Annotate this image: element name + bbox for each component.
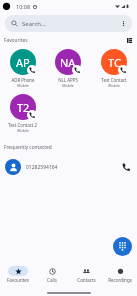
staticText: NA <box>60 55 76 70</box>
staticText: AP <box>16 55 30 70</box>
button[interactable]: T2 <box>0 92 45 137</box>
staticText: ADR Phone <box>11 77 35 83</box>
button[interactable]: Search... <box>5 15 132 32</box>
staticText: Recordings <box>108 277 132 283</box>
staticText: 01282594164 <box>26 164 58 171</box>
button[interactable]: Calls <box>35 264 69 283</box>
staticText: Frequently contacted <box>4 144 52 151</box>
button[interactable]: Contacts <box>69 264 103 283</box>
staticText: Mobile <box>62 83 74 88</box>
staticText: Contacts <box>77 277 96 283</box>
staticText: 10:08 <box>16 3 31 10</box>
staticText: Favourites <box>7 277 29 283</box>
button[interactable]: Change layout <box>124 35 134 45</box>
button[interactable]: Favourites <box>0 264 35 283</box>
button[interactable]: Call <box>120 161 132 173</box>
staticText: Calls <box>47 277 57 283</box>
staticText: T2 <box>17 100 30 115</box>
staticText: Mobile <box>108 83 120 88</box>
staticText: NLL APPS <box>58 77 78 83</box>
staticText: Test Contact <box>101 77 127 83</box>
button[interactable]: Dialpad <box>113 237 132 256</box>
button[interactable]: More options <box>119 19 128 28</box>
staticText: Favourites <box>4 37 28 44</box>
staticText: Test Contact 2 <box>8 122 37 128</box>
button[interactable]: AP <box>0 47 45 92</box>
button[interactable]: TC <box>91 47 137 92</box>
staticText: TC <box>108 55 121 70</box>
button[interactable]: 01282594164 <box>0 156 137 178</box>
staticText: Search... <box>22 20 46 28</box>
button[interactable]: Recordings <box>103 264 137 283</box>
staticText: Mobile <box>17 128 29 133</box>
staticText: Mobile <box>17 83 29 88</box>
button[interactable]: NA <box>45 47 91 92</box>
